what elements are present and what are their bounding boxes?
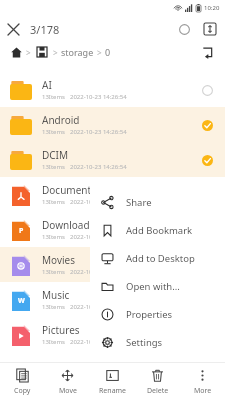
staticText: Add Bookmark	[126, 224, 193, 237]
button[interactable]: Copy	[0, 363, 45, 400]
staticText: 2022-10-23 14:26:54	[70, 198, 127, 206]
staticText: W	[18, 296, 25, 306]
staticText: 13Items	[42, 268, 65, 276]
staticText: 3/178	[30, 22, 60, 37]
button[interactable]: Home	[8, 44, 24, 60]
staticText: Settings	[126, 336, 163, 349]
staticText: Pictures	[42, 323, 80, 337]
staticText: >	[97, 47, 102, 58]
staticText: 2022-10-23 14:26:54	[70, 163, 127, 171]
staticText: 2022-10-23 14:26:54	[70, 338, 127, 346]
button[interactable]: Move	[45, 363, 90, 400]
button[interactable]: Internal storage	[34, 44, 50, 60]
staticText: 2022-10-23 14:26:54	[70, 128, 127, 136]
staticText: Documents	[42, 183, 96, 197]
button[interactable]: storage	[61, 46, 94, 58]
staticText: AI	[42, 78, 52, 92]
button[interactable]: Add Bookmark	[90, 216, 225, 244]
button[interactable]: W	[0, 282, 225, 317]
button[interactable]: Properties	[90, 300, 225, 328]
button[interactable]: AI	[0, 72, 225, 107]
button[interactable]: Selected	[197, 115, 217, 135]
staticText: More	[194, 386, 212, 396]
button[interactable]: Selected	[197, 150, 217, 170]
button[interactable]: Rename	[90, 363, 135, 400]
staticText: 13Items	[42, 93, 65, 101]
staticText: Properties	[126, 308, 173, 321]
button[interactable]: Android	[0, 107, 225, 142]
staticText: >	[26, 47, 31, 58]
staticText: 13Items	[42, 303, 65, 311]
staticText: P	[19, 226, 24, 236]
staticText: 13Items	[42, 338, 65, 346]
staticText: Open with...	[126, 280, 180, 293]
staticText: 10:20	[204, 4, 220, 12]
button[interactable]: DCIM	[0, 142, 225, 177]
button[interactable]: Close selection	[0, 16, 26, 42]
button[interactable]: Add to Desktop	[90, 244, 225, 272]
staticText: 2022-10-23 14:26:54	[70, 233, 127, 241]
staticText: Delete	[147, 386, 169, 396]
button[interactable]: Go up	[197, 42, 217, 62]
button[interactable]: P	[0, 212, 225, 247]
button[interactable]: 0	[105, 46, 111, 58]
staticText: Rename	[99, 386, 127, 396]
staticText: DCIM	[42, 148, 69, 162]
staticText: 2022-10-23 14:26:54	[70, 268, 127, 276]
button[interactable]: Delete	[135, 363, 180, 400]
staticText: Download	[42, 218, 90, 232]
staticText: 2022-10-23 14:26:54	[70, 93, 127, 101]
staticText: Add to Desktop	[126, 252, 195, 265]
button[interactable]: Pictures	[0, 317, 225, 352]
staticText: 13Items	[42, 128, 65, 136]
staticText: >	[53, 47, 58, 58]
staticText: Music	[42, 288, 70, 302]
staticText: Android	[42, 113, 80, 127]
staticText: 13Items	[42, 163, 65, 171]
button[interactable]: Settings	[90, 328, 225, 356]
staticText: Copy	[14, 386, 31, 396]
staticText: Move	[59, 386, 77, 396]
staticText: 13Items	[42, 198, 65, 206]
staticText: Share	[126, 196, 152, 209]
staticText: Movies	[42, 253, 76, 267]
button[interactable]: Sort	[197, 16, 223, 42]
button[interactable]: Select all	[171, 16, 197, 42]
staticText: 13Items	[42, 233, 65, 241]
button[interactable]: More	[180, 363, 225, 400]
button[interactable]: Not selected	[197, 80, 217, 100]
button[interactable]: Movies	[0, 247, 225, 282]
button[interactable]: Documents	[0, 177, 225, 212]
button[interactable]: Share	[90, 188, 225, 216]
staticText: 2022-10-23 14:26:54	[70, 303, 127, 311]
button[interactable]: Open with...	[90, 272, 225, 300]
